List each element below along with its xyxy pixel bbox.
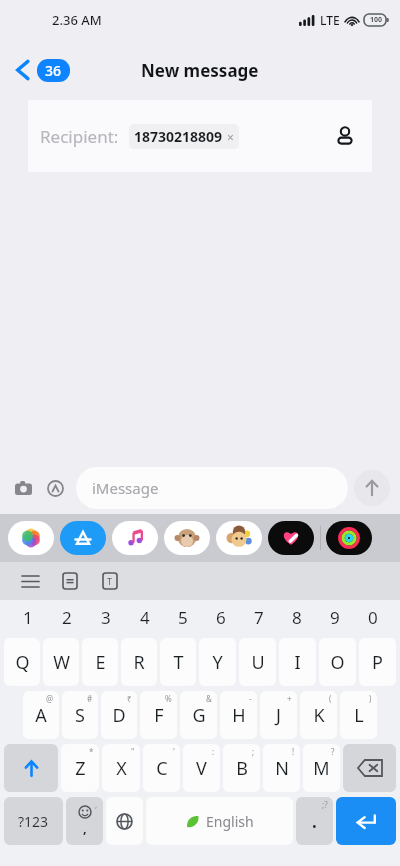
button[interactable]: B — [223, 744, 260, 792]
button[interactable]: Z — [61, 744, 99, 792]
button[interactable]: Camera — [10, 475, 36, 501]
button[interactable]: Photos — [8, 521, 54, 555]
button[interactable]: Add contact — [330, 121, 360, 151]
button[interactable]: I — [279, 638, 316, 686]
button[interactable]: 6 — [202, 600, 240, 634]
button[interactable]: U — [239, 638, 276, 686]
button[interactable]: Text formatting — [94, 565, 126, 597]
staticText: @ — [46, 693, 54, 704]
staticText: English — [206, 812, 254, 831]
button[interactable]: E — [82, 638, 118, 686]
button[interactable]: Y — [199, 638, 236, 686]
button[interactable]: P — [359, 638, 396, 686]
button[interactable]: . — [296, 797, 333, 845]
staticText: T — [107, 575, 113, 587]
staticText: ?123 — [18, 812, 49, 831]
staticText: X — [116, 756, 127, 781]
staticText: ; — [252, 746, 255, 757]
staticText: T — [173, 650, 184, 675]
button[interactable]: Shift — [4, 744, 58, 792]
staticText: Recipient: — [40, 125, 119, 148]
staticText: 6 — [216, 606, 226, 629]
staticText: 36 — [45, 61, 62, 80]
button[interactable]: 7 — [240, 600, 278, 634]
button[interactable]: Back to 36 conversations — [12, 54, 74, 86]
button[interactable]: 3 — [86, 600, 125, 634]
button[interactable]: O — [319, 638, 356, 686]
staticText: ) — [369, 693, 372, 704]
button[interactable]: L — [340, 691, 377, 739]
button[interactable]: X — [102, 744, 140, 792]
button[interactable]: Fitness — [326, 521, 372, 555]
button[interactable]: J — [260, 691, 297, 739]
button[interactable]: M — [303, 744, 340, 792]
staticText: E — [95, 650, 106, 675]
staticText: , — [83, 819, 87, 837]
staticText: C — [156, 756, 168, 781]
staticText: P — [372, 650, 383, 675]
button[interactable]: App Store — [42, 475, 68, 501]
staticText: K — [313, 703, 325, 728]
button[interactable]: Enter — [336, 797, 396, 845]
button[interactable]: 1 — [8, 600, 47, 634]
staticText: U — [251, 650, 265, 675]
button[interactable]: R — [121, 638, 157, 686]
button[interactable]: H — [220, 691, 257, 739]
staticText: B — [236, 756, 248, 781]
staticText: G — [192, 703, 206, 728]
button[interactable]: 0 — [354, 600, 392, 634]
staticText: ;? — [322, 799, 328, 810]
button[interactable]: F — [140, 691, 177, 739]
staticText: D — [112, 703, 126, 728]
button[interactable]: App Store — [60, 521, 106, 555]
button[interactable]: ?123 — [4, 797, 63, 845]
button[interactable]: Memoji — [164, 521, 210, 555]
staticText: ₹ — [127, 693, 132, 704]
staticText: * — [89, 746, 94, 757]
staticText: # — [87, 693, 93, 704]
staticText: iMessage — [92, 478, 159, 498]
button[interactable]: Menu — [14, 565, 46, 597]
staticText: V — [196, 756, 207, 781]
button[interactable]: Send — [354, 470, 390, 506]
button[interactable]: Q — [4, 638, 40, 686]
button[interactable]: Change language — [106, 797, 143, 845]
button[interactable]: T — [160, 638, 196, 686]
button[interactable]: 9 — [316, 600, 354, 634]
staticText: H — [232, 703, 246, 728]
staticText: R — [133, 650, 145, 675]
button[interactable]: G — [180, 691, 217, 739]
staticText: J — [276, 703, 281, 728]
button[interactable]: S — [62, 691, 98, 739]
button[interactable]: D — [101, 691, 137, 739]
button[interactable]: V — [183, 744, 220, 792]
button[interactable]: Memoji Stickers — [216, 521, 262, 555]
button[interactable]: W — [43, 638, 79, 686]
button[interactable]: K — [300, 691, 337, 739]
button[interactable]: C — [143, 744, 180, 792]
button[interactable]: N — [263, 744, 300, 792]
staticText: I — [294, 650, 301, 675]
button[interactable]: 8 — [278, 600, 316, 634]
staticText: 2.36 AM — [52, 11, 102, 29]
button[interactable]: A — [23, 691, 59, 739]
button[interactable]: Music — [112, 521, 158, 555]
button[interactable]: Emoji — [66, 797, 103, 845]
button[interactable]: English — [146, 797, 293, 845]
button[interactable]: 2 — [47, 600, 86, 634]
staticText: 18730218809 — [134, 127, 223, 146]
button[interactable]: Backspace — [343, 744, 396, 792]
staticText: 8 — [292, 606, 302, 629]
staticText: O — [330, 650, 345, 675]
button[interactable]: Digital Touch — [268, 521, 314, 555]
button[interactable]: 5 — [164, 600, 202, 634]
button[interactable]: 18730218809 — [129, 124, 239, 149]
button[interactable]: Clipboard — [54, 565, 86, 597]
staticText: 5 — [178, 606, 188, 629]
button[interactable]: 4 — [125, 600, 164, 634]
staticText: % — [165, 693, 172, 704]
staticText: ( — [329, 693, 332, 704]
button[interactable]: iMessage — [76, 467, 348, 509]
button[interactable]: Recipient: — [28, 100, 372, 172]
staticText: - — [249, 693, 252, 704]
